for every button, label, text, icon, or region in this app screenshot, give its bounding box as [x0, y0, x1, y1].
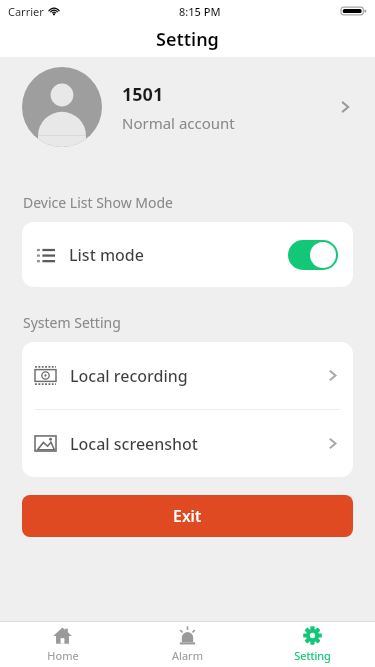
button[interactable]: Alarm	[125, 622, 250, 667]
button[interactable]: List mode toggle	[288, 240, 338, 270]
staticText: System Setting	[23, 313, 121, 332]
staticText: 1501	[122, 82, 164, 107]
button[interactable]: Local recording	[22, 342, 353, 409]
staticText: Local recording	[70, 365, 188, 387]
staticText: List mode	[69, 244, 144, 266]
staticText: Exit	[173, 505, 202, 527]
button[interactable]: Home	[0, 622, 125, 667]
staticText: Normal account	[122, 113, 235, 133]
button[interactable]: Exit	[22, 495, 353, 537]
staticText: Alarm	[172, 648, 203, 663]
button[interactable]: Setting	[250, 622, 375, 667]
staticText: 8:15 PM	[179, 4, 221, 19]
button[interactable]: List mode	[22, 222, 353, 287]
staticText: Setting	[294, 648, 331, 663]
button[interactable]: Local screenshot	[22, 410, 353, 477]
staticText: Local screenshot	[70, 433, 199, 455]
button[interactable]: 1501	[0, 57, 375, 157]
staticText: Carrier	[8, 4, 44, 19]
staticText: Setting	[156, 27, 219, 52]
staticText: Device List Show Mode	[23, 193, 174, 212]
staticText: Home	[47, 648, 79, 663]
